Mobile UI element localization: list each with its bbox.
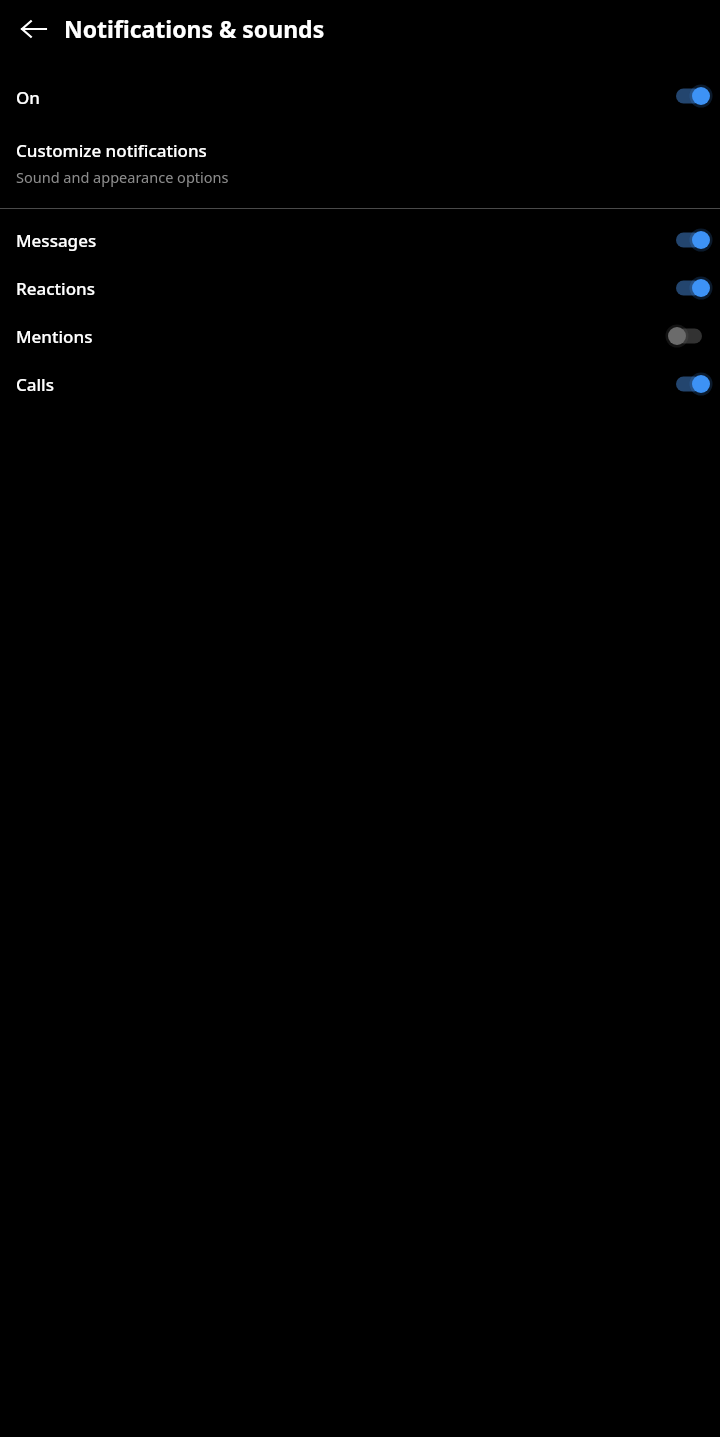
- staticText: Mentions: [16, 325, 93, 348]
- staticText: Calls: [16, 373, 54, 396]
- staticText: Notifications & sounds: [64, 13, 325, 44]
- button[interactable]: Messages: [0, 216, 720, 264]
- staticText: Reactions: [16, 277, 95, 300]
- button[interactable]: Back: [10, 5, 58, 53]
- button[interactable]: Calls: [0, 360, 720, 408]
- staticText: Sound and appearance options: [16, 167, 229, 187]
- staticText: Customize notifications: [16, 139, 207, 162]
- button[interactable]: Customize notifications: [0, 133, 720, 203]
- button[interactable]: On: [0, 57, 720, 133]
- button[interactable]: Mentions: [0, 312, 720, 360]
- staticText: On: [16, 86, 40, 109]
- staticText: Messages: [16, 229, 97, 252]
- button[interactable]: Reactions: [0, 264, 720, 312]
